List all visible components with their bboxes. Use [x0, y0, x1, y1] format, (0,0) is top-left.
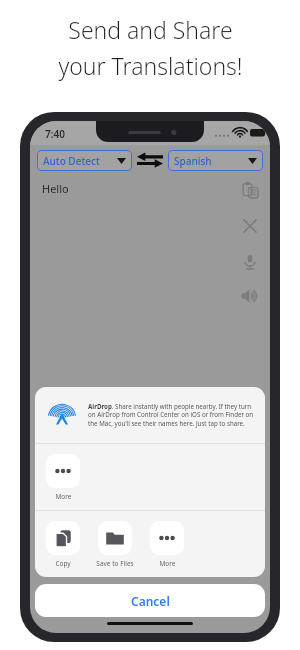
button[interactable]: Microphone: [239, 251, 261, 273]
button[interactable]: Save to Files: [96, 521, 134, 568]
staticText: 7:40: [45, 127, 65, 141]
staticText: Save to Files: [96, 559, 134, 568]
button[interactable]: AirDrop. Share instantly with people nea…: [35, 387, 265, 443]
staticText: Cancel: [131, 593, 170, 609]
button[interactable]: Swap languages: [132, 147, 168, 173]
button[interactable]: Copy: [46, 521, 80, 568]
staticText: Copy: [55, 559, 71, 568]
staticText: More: [55, 492, 72, 501]
button[interactable]: Auto Detect: [37, 150, 132, 171]
button[interactable]: Speak: [239, 285, 261, 307]
staticText: your Translations!: [58, 50, 243, 81]
button[interactable]: More: [150, 521, 184, 568]
staticText: Send and Share: [68, 14, 233, 45]
button[interactable]: Cancel: [35, 584, 265, 617]
staticText: Hello: [42, 181, 69, 196]
staticText: More: [159, 559, 176, 568]
staticText: AirDrop. Share instantly with people nea…: [88, 402, 255, 428]
staticText: Auto Detect: [43, 154, 100, 168]
button[interactable]: More: [46, 454, 80, 501]
button[interactable]: Clear: [239, 215, 261, 237]
button[interactable]: Spanish: [168, 150, 263, 171]
button[interactable]: Paste: [239, 179, 261, 201]
staticText: Spanish: [174, 154, 212, 168]
